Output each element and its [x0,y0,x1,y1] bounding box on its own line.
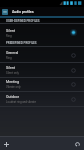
staticText: Silent [6,66,15,70]
button[interactable]: Silent [0,63,84,77]
button[interactable]: Silent [0,24,84,41]
staticText: USER-DEFINED PROFILES [6,19,40,22]
button[interactable]: Outdoor [0,92,84,106]
staticText: Ring [6,56,12,59]
staticText: General [6,51,19,55]
staticText: Audio profiles [12,10,34,14]
staticText: Meeting [6,80,20,84]
staticText: Ring [6,34,12,37]
button[interactable]: General [0,47,84,63]
staticText: Vibrate only [6,85,21,88]
staticText: Loudest ring and vibrate [6,100,36,103]
staticText: Silent only [6,71,19,74]
button[interactable]: Navigate up [0,7,12,16]
staticText: Silent [6,29,15,33]
button[interactable]: Reset profiles [71,137,84,150]
button[interactable]: Add profile [0,137,13,150]
button[interactable]: Meeting [0,77,84,91]
staticText: PREDEFINED PROFILES [6,41,37,44]
staticText: Outdoor [6,95,19,99]
